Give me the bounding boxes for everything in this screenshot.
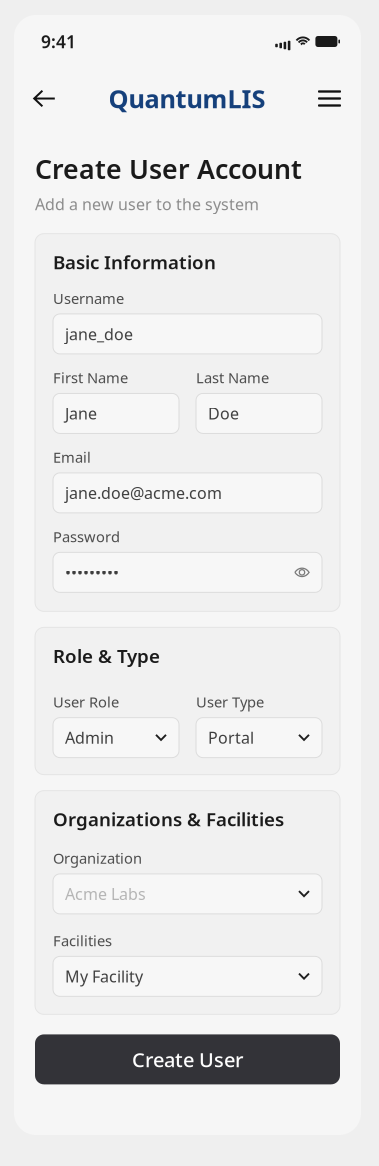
- staticText: •••••••••: [65, 562, 119, 583]
- staticText: Email: [53, 447, 91, 467]
- staticText: User Role: [53, 692, 119, 712]
- staticText: Role & Type: [53, 643, 160, 668]
- staticText: Admin: [65, 727, 114, 748]
- staticText: Basic Information: [53, 250, 216, 274]
- staticText: Doe: [208, 403, 239, 424]
- staticText: Password: [53, 527, 120, 546]
- button[interactable]: Menu: [318, 78, 341, 118]
- staticText: Facilities: [53, 931, 112, 950]
- staticText: Add a new user to the system: [35, 193, 259, 215]
- button[interactable]: Jane: [53, 393, 179, 433]
- staticText: User Type: [196, 692, 264, 712]
- staticText: Jane: [65, 403, 97, 424]
- staticText: Organization: [53, 848, 142, 868]
- button[interactable]: Admin: [53, 718, 179, 758]
- staticText: Portal: [208, 727, 254, 748]
- staticText: jane.doe@acme.com: [65, 482, 222, 503]
- staticText: My Facility: [65, 966, 143, 987]
- button[interactable]: My Facility: [53, 956, 322, 996]
- staticText: jane_doe: [65, 323, 133, 344]
- button[interactable]: Back: [33, 78, 56, 118]
- staticText: Create User: [132, 1046, 243, 1073]
- staticText: Create User Account: [35, 151, 302, 186]
- button[interactable]: Doe: [196, 393, 322, 433]
- button[interactable]: jane_doe: [53, 314, 322, 354]
- button[interactable]: Create User: [35, 1034, 340, 1084]
- staticText: 9:41: [41, 30, 76, 53]
- button[interactable]: Acme Labs: [53, 874, 322, 914]
- staticText: QuantumLIS: [108, 82, 265, 115]
- button[interactable]: Portal: [196, 718, 322, 758]
- staticText: First Name: [53, 368, 128, 387]
- button[interactable]: •••••••••: [53, 552, 322, 592]
- staticText: Last Name: [196, 368, 269, 387]
- button[interactable]: jane.doe@acme.com: [53, 473, 322, 513]
- staticText: Acme Labs: [65, 883, 146, 904]
- staticText: Username: [53, 288, 124, 308]
- staticText: Organizations & Facilities: [53, 807, 284, 831]
